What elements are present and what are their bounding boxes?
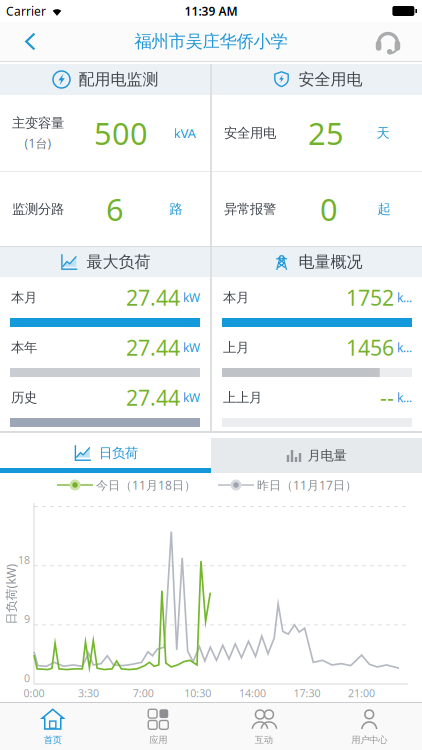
staticText: 互动	[255, 734, 273, 746]
staticText: 起	[377, 201, 390, 217]
staticText: kW	[183, 289, 200, 305]
staticText: 14:00	[239, 686, 266, 700]
staticText: 17:30	[293, 686, 320, 700]
staticText: (1台)	[24, 135, 51, 151]
staticText: --	[380, 383, 394, 412]
staticText: 25	[308, 113, 344, 153]
staticText: 10:30	[184, 686, 211, 700]
button[interactable]: 日负荷	[0, 438, 211, 473]
staticText: 18	[18, 553, 30, 567]
staticText: 1456	[346, 333, 394, 362]
staticText: 0	[24, 671, 30, 685]
staticText: kW	[183, 389, 200, 405]
button[interactable]: 月电量	[211, 438, 422, 473]
staticText: 上上月	[223, 389, 262, 406]
staticText: 首页	[44, 734, 62, 746]
staticText: 27.44	[126, 283, 180, 312]
staticText: 9	[24, 612, 30, 626]
staticText: 最大负荷	[86, 252, 150, 272]
staticText: 本年	[11, 339, 37, 356]
button[interactable]: Back	[0, 22, 37, 61]
staticText: 月电量	[307, 447, 346, 464]
staticText: 本月	[11, 289, 37, 306]
staticText: 1752	[346, 283, 394, 312]
staticText: 安全用电	[224, 125, 276, 141]
staticText: k...	[397, 389, 412, 405]
button[interactable]: 应用	[105, 703, 211, 750]
staticText: 7:00	[133, 686, 154, 700]
staticText: 21:00	[348, 686, 375, 700]
button[interactable]: 首页	[0, 703, 105, 750]
staticText: 6	[106, 189, 124, 229]
staticText: 本月	[223, 289, 249, 306]
staticText: 上月	[223, 339, 249, 356]
staticText: 福州市吴庄华侨小学	[134, 31, 287, 52]
staticText: 异常报警	[224, 201, 276, 217]
staticText: kVA	[173, 124, 196, 142]
staticText: k...	[397, 339, 412, 355]
staticText: 日负荷	[99, 445, 138, 461]
button[interactable]: 互动	[211, 703, 316, 750]
staticText: 路	[169, 201, 182, 217]
staticText: 0:00	[23, 686, 44, 700]
button[interactable]: Customer Service	[374, 21, 422, 61]
staticText: 27.44	[126, 383, 180, 412]
staticText: 日负荷(kW)	[0, 586, 41, 602]
staticText: k...	[397, 289, 412, 305]
staticText: 500	[94, 113, 148, 153]
staticText: 昨日（11月17日）	[257, 477, 357, 493]
staticText: 应用	[149, 734, 167, 746]
staticText: 监测分路	[12, 201, 64, 217]
staticText: 11:39 AM	[184, 3, 237, 19]
staticText: 配用电监测	[78, 70, 158, 89]
staticText: 27.44	[126, 333, 180, 362]
staticText: 安全用电	[298, 70, 362, 89]
staticText: 今日（11月18日）	[96, 477, 196, 493]
staticText: 天	[376, 125, 389, 141]
staticText: 历史	[11, 389, 37, 406]
staticText: 0	[320, 189, 338, 229]
button[interactable]: 用户中心	[316, 703, 422, 750]
staticText: 用户中心	[351, 734, 387, 746]
staticText: kW	[183, 339, 200, 355]
staticText: 3:30	[78, 686, 99, 700]
staticText: Carrier	[6, 3, 46, 19]
staticText: 电量概况	[298, 252, 362, 272]
staticText: 主变容量	[12, 115, 64, 131]
